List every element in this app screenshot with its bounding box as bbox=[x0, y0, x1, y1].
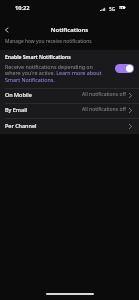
button[interactable]: Enable Smart Notifications bbox=[115, 64, 134, 73]
button[interactable]: Enable Smart Notifications bbox=[0, 50, 139, 88]
button[interactable]: Per Channel bbox=[0, 118, 139, 134]
staticText: Manage how you receive notifications bbox=[5, 38, 92, 45]
staticText: All notifications off bbox=[82, 106, 126, 113]
button[interactable]: Back bbox=[0, 24, 12, 36]
staticText: 51 bbox=[119, 6, 124, 11]
staticText: All notifications off bbox=[82, 91, 126, 98]
staticText: 5G bbox=[109, 6, 116, 12]
staticText: On Mobile bbox=[5, 91, 32, 98]
staticText: Receive notifications depending on where… bbox=[5, 63, 106, 84]
staticText: Notifications bbox=[0, 26, 139, 34]
staticText: By Email bbox=[5, 106, 28, 113]
button[interactable]: By Email bbox=[0, 103, 139, 118]
button[interactable]: On Mobile bbox=[0, 88, 139, 103]
staticText: 10:22 bbox=[15, 4, 30, 12]
staticText: Enable Smart Notifications bbox=[5, 54, 71, 61]
staticText: Per Channel bbox=[5, 122, 37, 129]
